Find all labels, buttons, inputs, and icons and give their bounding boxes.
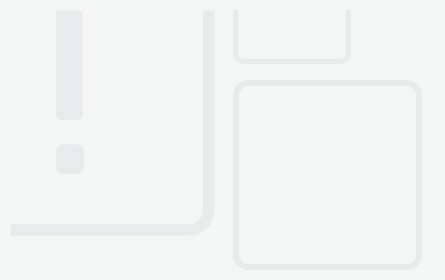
button[interactable]: Open card	[233, 10, 351, 64]
button[interactable]: Open card	[233, 80, 422, 270]
